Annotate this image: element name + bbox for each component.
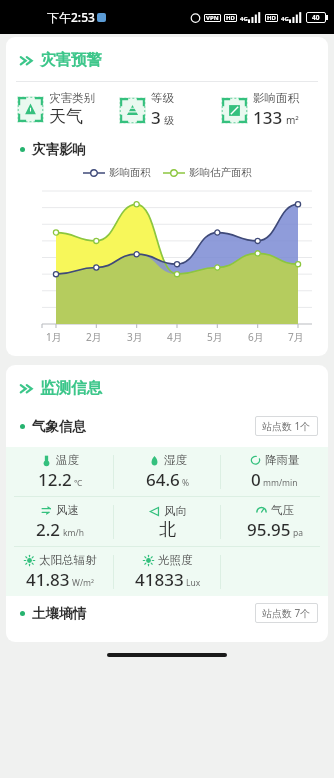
staticText: 北 xyxy=(159,519,176,540)
staticText: 6月 xyxy=(248,330,264,344)
staticText: 温度 xyxy=(56,453,79,467)
other: metric icon xyxy=(41,505,52,516)
staticText: 95.95 xyxy=(247,518,291,541)
staticText: 灾害类别 xyxy=(49,91,95,105)
button[interactable]: 灾害影响 xyxy=(6,133,328,160)
staticText: 级 xyxy=(164,114,174,127)
staticText: 2.2 xyxy=(36,518,61,541)
staticText: 风向 xyxy=(164,504,187,518)
staticText: 风速 xyxy=(56,503,79,517)
staticText: pa xyxy=(293,527,303,539)
button[interactable]: 影响估产面积 xyxy=(163,166,252,179)
button[interactable]: 土壤墒情 xyxy=(6,596,328,628)
staticText: HD xyxy=(226,14,235,22)
staticText: 64.6 xyxy=(146,468,180,491)
staticText: 0 xyxy=(251,468,261,491)
button[interactable]: metric icon xyxy=(6,497,114,546)
staticText: 12.2 xyxy=(38,468,72,491)
staticText: 灾害预警 xyxy=(40,50,102,70)
other: metric icon xyxy=(24,555,35,566)
staticText: W/m² xyxy=(72,577,94,589)
staticText: 4G xyxy=(240,15,248,23)
other: metric icon xyxy=(143,555,154,566)
staticText: 太阳总辐射 xyxy=(39,553,97,567)
staticText: 影响面积 xyxy=(109,166,151,179)
staticText: km/h xyxy=(63,527,84,539)
staticText: 5月 xyxy=(207,330,223,344)
staticText: 41833 xyxy=(135,568,184,591)
staticText: 天气 xyxy=(49,106,83,127)
other: metric icon xyxy=(41,455,52,466)
staticText: 3 xyxy=(151,106,161,129)
staticText: 降雨量 xyxy=(265,453,300,467)
staticText: 1月 xyxy=(46,330,62,344)
staticText: 下午2:53 xyxy=(47,9,95,25)
button[interactable]: 影响面积 xyxy=(83,166,151,179)
staticText: 2月 xyxy=(86,330,102,344)
other: metric icon xyxy=(250,455,261,466)
button[interactable]: 监测信息 xyxy=(6,365,328,409)
staticText: 站点数 1个 xyxy=(262,419,311,433)
button[interactable]: 灾害类别 xyxy=(17,91,119,127)
staticText: 站点数 7个 xyxy=(262,606,311,620)
staticText: 气象信息 xyxy=(32,418,86,435)
staticText: VPN xyxy=(206,14,219,22)
staticText: 气压 xyxy=(271,503,294,517)
button[interactable]: metric icon xyxy=(221,447,328,496)
staticText: 影响估产面积 xyxy=(189,166,252,179)
staticText: 光照度 xyxy=(158,553,193,567)
button[interactable]: metric icon xyxy=(114,497,221,546)
button[interactable]: 等级 xyxy=(119,91,221,129)
button[interactable]: metric icon xyxy=(221,497,328,546)
button[interactable]: 站点数 7个 xyxy=(255,603,318,623)
staticText: 7月 xyxy=(288,330,304,344)
staticText: 133 xyxy=(253,106,283,129)
staticText: 影响面积 xyxy=(253,91,299,105)
button[interactable]: 气象信息 xyxy=(6,409,328,441)
staticText: mm/min xyxy=(263,477,298,489)
staticText: HD xyxy=(267,14,276,22)
other: metric icon xyxy=(149,455,160,466)
button[interactable]: 灾害预警 xyxy=(6,37,328,81)
staticText: 3月 xyxy=(127,330,143,344)
staticText: 灾害影响 xyxy=(32,141,86,158)
staticText: 等级 xyxy=(151,91,174,105)
staticText: 湿度 xyxy=(164,453,187,467)
staticText: 土壤墒情 xyxy=(32,605,86,622)
staticText: Lux xyxy=(186,577,201,589)
staticText: 41.83 xyxy=(26,568,70,591)
staticText: 监测信息 xyxy=(40,378,102,398)
other: metric icon xyxy=(149,506,160,517)
button[interactable]: metric icon xyxy=(6,447,114,496)
staticText: % xyxy=(182,477,190,489)
other: metric icon xyxy=(256,505,267,516)
button[interactable]: metric icon xyxy=(114,547,221,596)
button[interactable]: 站点数 1个 xyxy=(255,416,318,436)
staticText: ℃ xyxy=(74,477,83,489)
staticText: 4月 xyxy=(167,330,183,344)
staticText: 4G xyxy=(281,15,289,23)
button[interactable]: metric icon xyxy=(114,447,221,496)
button[interactable]: 影响面积 xyxy=(221,91,328,129)
button[interactable]: metric icon xyxy=(6,547,114,596)
staticText: 40 xyxy=(312,13,320,22)
staticText: m² xyxy=(286,113,299,127)
